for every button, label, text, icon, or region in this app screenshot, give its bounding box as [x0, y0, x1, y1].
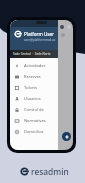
staticText: resadmin — [31, 166, 69, 177]
staticText: Control de acceso — [24, 107, 56, 112]
button[interactable]: Add — [62, 132, 71, 141]
button[interactable]: Normativas — [10, 115, 58, 126]
staticText: Usuarios — [24, 96, 41, 101]
staticText: Reservas — [24, 74, 41, 79]
button[interactable]: Domicilios — [10, 126, 58, 137]
staticText: Sede Central · Sede Norte — [13, 52, 51, 56]
button[interactable]: Control de acceso — [10, 104, 58, 115]
staticText: Tickets — [24, 85, 37, 90]
staticText: Platform User — [24, 31, 54, 37]
button[interactable]: Actividades — [10, 60, 58, 71]
staticText: Normativas — [24, 118, 46, 123]
staticText: Domicilios — [24, 129, 44, 134]
button[interactable]: Tickets — [10, 82, 58, 93]
staticText: Actividades — [24, 63, 46, 68]
button[interactable]: Usuarios — [10, 93, 58, 104]
staticText: user@platformmail.com — [24, 38, 56, 42]
button[interactable]: Reservas — [10, 71, 58, 82]
